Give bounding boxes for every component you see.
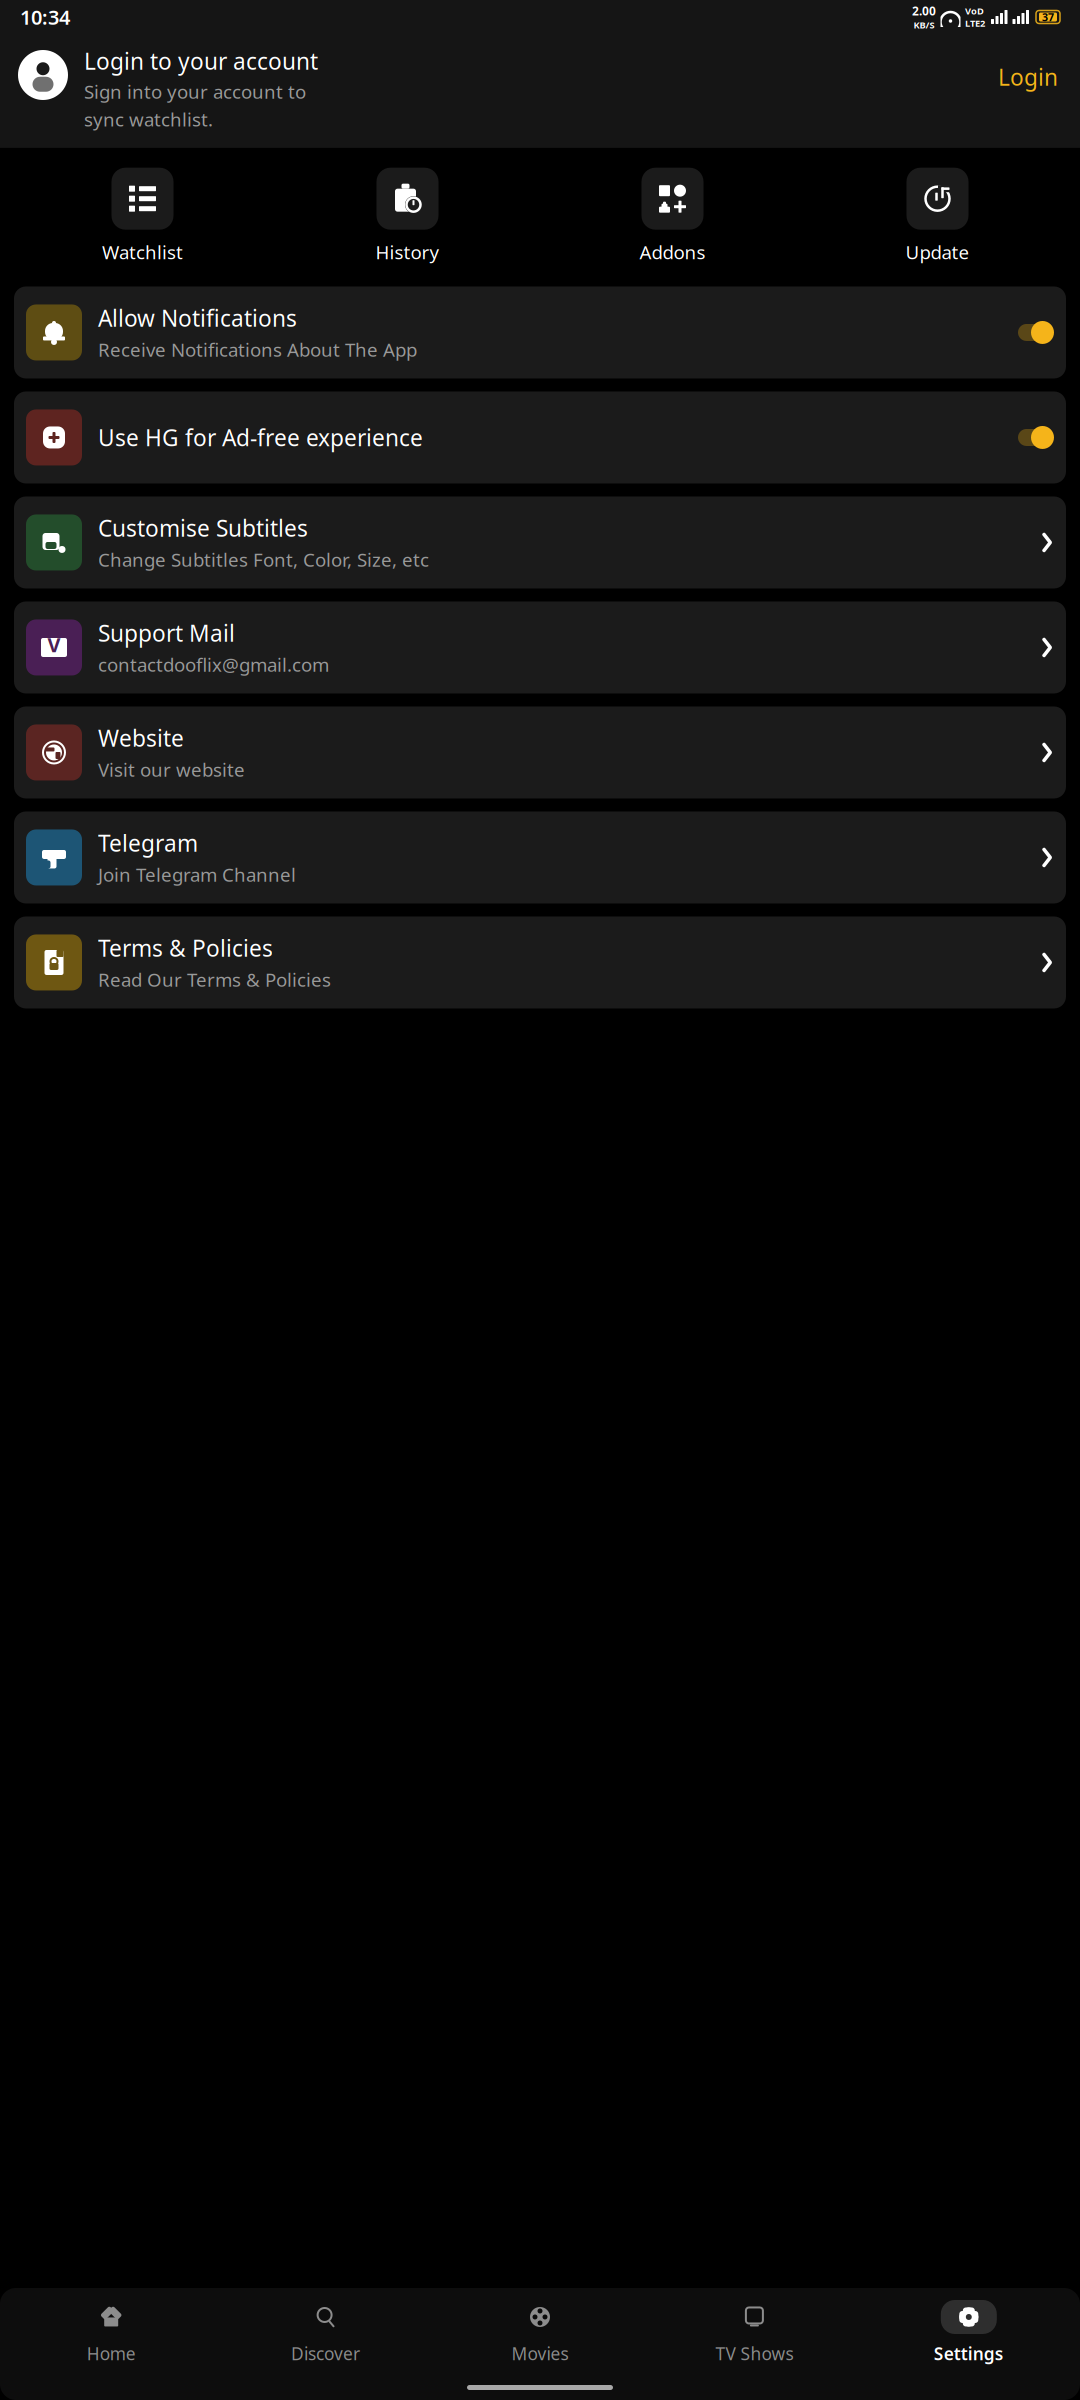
staticText: Addons xyxy=(639,240,705,264)
staticText: sync watchlist. xyxy=(84,107,213,132)
button[interactable]: Addons xyxy=(540,168,805,264)
button[interactable]: Login xyxy=(994,56,1062,98)
staticText: contactdooflix@gmail.com xyxy=(98,652,329,677)
staticText: Support Mail xyxy=(98,618,235,648)
staticText: Update xyxy=(905,240,969,264)
button[interactable]: Watchlist xyxy=(10,168,275,264)
staticText: Website xyxy=(98,723,184,753)
staticText: Discover xyxy=(291,2342,360,2365)
staticText: History xyxy=(375,240,439,264)
staticText: Login to your account xyxy=(84,46,318,76)
button[interactable]: Discover xyxy=(218,2300,433,2365)
staticText: LTE2 xyxy=(965,17,985,29)
button[interactable]: Movies xyxy=(433,2300,647,2365)
button[interactable]: V xyxy=(14,601,1066,693)
staticText: Settings xyxy=(934,2342,1004,2365)
staticText: Watchlist xyxy=(102,240,183,264)
staticText: Telegram xyxy=(98,828,198,858)
button[interactable]: Settings xyxy=(862,2300,1076,2365)
staticText: Allow Notifications xyxy=(98,303,297,333)
staticText: KB/S xyxy=(913,19,934,31)
button[interactable]: Terms & Policies xyxy=(14,916,1066,1008)
staticText: Read Our Terms & Policies xyxy=(98,967,331,992)
staticText: Use HG for Ad-free experience xyxy=(98,422,423,452)
staticText: Join Telegram Channel xyxy=(98,862,296,887)
button[interactable]: Home xyxy=(4,2300,218,2365)
staticText: Movies xyxy=(511,2342,568,2365)
button[interactable]: Use HG for Ad-free experience xyxy=(14,391,1066,483)
staticText: Change Subtitles Font, Color, Size, etc xyxy=(98,547,429,572)
button[interactable]: Update xyxy=(805,168,1070,264)
staticText: Terms & Policies xyxy=(98,933,273,963)
button[interactable]: TV Shows xyxy=(647,2300,862,2365)
staticText: V xyxy=(47,631,60,658)
staticText: VoD xyxy=(965,5,984,17)
staticText: TV Shows xyxy=(715,2342,793,2365)
staticText: 10:34 xyxy=(20,4,70,30)
staticText: 2.00 xyxy=(912,3,936,19)
staticText: Customise Subtitles xyxy=(98,513,308,543)
button[interactable]: Allow Notifications xyxy=(14,286,1066,378)
staticText: Receive Notifications About The App xyxy=(98,337,417,362)
staticText: Sign into your account to xyxy=(84,79,306,104)
staticText: Login xyxy=(998,62,1058,92)
staticText: Visit our website xyxy=(98,757,245,782)
button[interactable]: Customise Subtitles xyxy=(14,496,1066,588)
button[interactable]: Website xyxy=(14,706,1066,798)
button[interactable]: History xyxy=(275,168,540,264)
staticText: Home xyxy=(87,2342,136,2365)
button[interactable]: Telegram xyxy=(14,811,1066,903)
staticText: 37 xyxy=(1042,10,1054,24)
